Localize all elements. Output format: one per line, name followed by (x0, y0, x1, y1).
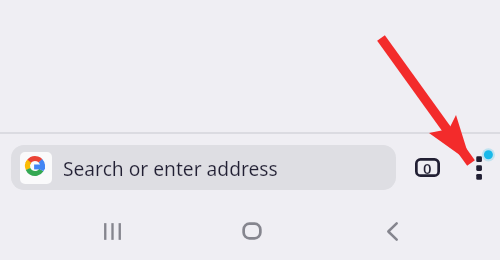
button[interactable]: More options (462, 151, 495, 184)
button[interactable]: Search or enter address (11, 145, 396, 190)
button[interactable]: Back (372, 211, 412, 251)
button[interactable]: Recents (92, 211, 132, 251)
staticText: Search or enter address (63, 155, 278, 181)
staticText: 0 (423, 158, 432, 178)
button[interactable]: Tabs (409, 151, 446, 184)
button[interactable]: Home (232, 211, 272, 251)
